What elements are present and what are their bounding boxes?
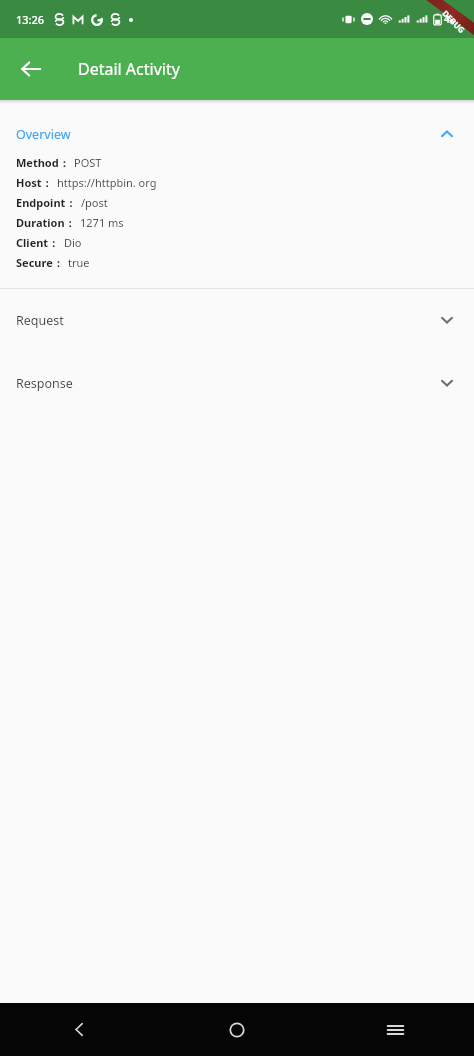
staticText: Client： — [16, 235, 60, 250]
button[interactable]: Back — [9, 47, 53, 91]
staticText: Secure： — [16, 255, 64, 270]
staticText: Response — [16, 375, 73, 392]
button[interactable]: Back — [0, 1003, 158, 1056]
staticText: Endpoint： — [16, 195, 77, 210]
staticText: Host： — [16, 175, 53, 190]
staticText: true — [68, 255, 90, 270]
staticText: 48% — [444, 12, 464, 26]
staticText: Dio — [64, 235, 82, 250]
staticText: Duration： — [16, 215, 76, 230]
staticText: 13:26 — [16, 12, 45, 27]
staticText: /post — [81, 195, 108, 210]
staticText: POST — [74, 155, 102, 170]
button[interactable]: Home — [158, 1003, 316, 1056]
staticText: DEBUG — [440, 8, 468, 35]
button[interactable]: Response — [0, 360, 474, 406]
button[interactable]: Recent apps — [316, 1003, 474, 1056]
staticText: 1271 ms — [80, 215, 124, 230]
staticText: https://httpbin. org — [57, 175, 157, 190]
staticText: Detail Activity — [78, 58, 180, 80]
staticText: Overview — [16, 126, 71, 143]
staticText: Request — [16, 312, 64, 329]
staticText: Method： — [16, 155, 70, 170]
button[interactable]: Overview — [0, 116, 474, 152]
button[interactable]: Request — [0, 297, 474, 343]
